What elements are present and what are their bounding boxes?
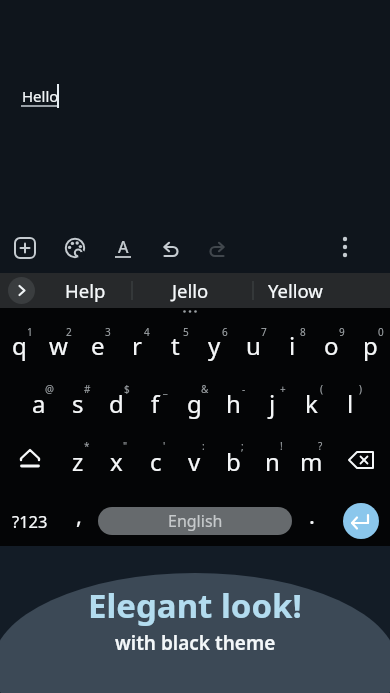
staticText: " xyxy=(123,439,128,453)
button[interactable] xyxy=(331,431,390,489)
staticText: 6 xyxy=(222,325,228,339)
button[interactable]: q xyxy=(0,315,39,373)
staticText: ! xyxy=(280,439,283,453)
button[interactable]: Yellow xyxy=(240,273,350,308)
staticText: . xyxy=(309,500,315,530)
staticText: c xyxy=(150,445,162,478)
button[interactable]: f xyxy=(136,373,175,431)
staticText: u xyxy=(246,329,261,362)
staticText: ' xyxy=(163,439,166,453)
staticText: d xyxy=(109,387,124,420)
button[interactable]: ?123 xyxy=(0,489,59,546)
staticText: 1 xyxy=(27,325,33,339)
staticText: 8 xyxy=(300,325,306,339)
button[interactable]: , xyxy=(59,489,98,546)
button[interactable]: y xyxy=(195,315,234,373)
button[interactable] xyxy=(14,237,36,259)
staticText: 0 xyxy=(378,325,384,339)
staticText: * xyxy=(84,439,90,453)
staticText: 3 xyxy=(105,325,111,339)
staticText: English xyxy=(168,510,223,532)
staticText: 7 xyxy=(261,325,267,339)
staticText: y xyxy=(208,329,221,362)
button[interactable] xyxy=(343,503,379,539)
staticText: - xyxy=(242,382,246,396)
staticText: $ xyxy=(124,382,130,396)
button[interactable]: s xyxy=(58,373,97,431)
staticText: e xyxy=(91,329,105,362)
staticText: v xyxy=(188,445,201,478)
button[interactable]: o xyxy=(312,315,351,373)
button[interactable]: p xyxy=(351,315,390,373)
button[interactable]: . xyxy=(292,489,331,546)
staticText: o xyxy=(324,329,339,362)
staticText: g xyxy=(187,387,202,420)
staticText: Yellow xyxy=(268,278,323,303)
staticText: k xyxy=(305,387,318,420)
staticText: l xyxy=(347,387,354,420)
button[interactable]: A xyxy=(112,236,134,260)
button[interactable]: u xyxy=(234,315,273,373)
staticText: + xyxy=(280,382,286,396)
staticText: 9 xyxy=(339,325,345,339)
staticText: with black theme xyxy=(115,630,276,656)
button[interactable] xyxy=(64,237,86,259)
staticText: s xyxy=(72,387,84,420)
button[interactable]: Jello xyxy=(135,273,245,308)
button[interactable]: x xyxy=(97,431,136,489)
button[interactable] xyxy=(8,277,35,304)
button[interactable]: m xyxy=(292,431,331,489)
staticText: x xyxy=(110,445,123,478)
staticText: ; xyxy=(241,439,244,453)
staticText: a xyxy=(32,387,46,420)
staticText: m xyxy=(300,445,323,478)
button[interactable]: a xyxy=(20,373,58,431)
button[interactable]: c xyxy=(136,431,175,489)
button[interactable]: b xyxy=(214,431,253,489)
staticText: r xyxy=(132,329,142,362)
button[interactable]: i xyxy=(273,315,312,373)
staticText: # xyxy=(84,382,91,396)
staticText: b xyxy=(226,445,241,478)
staticText: ? xyxy=(318,439,323,453)
button[interactable] xyxy=(207,237,229,259)
staticText: 5 xyxy=(183,325,189,339)
button[interactable]: English xyxy=(98,507,292,535)
button[interactable]: z xyxy=(59,431,97,489)
button[interactable]: t xyxy=(156,315,195,373)
staticText: : xyxy=(202,439,205,453)
staticText: Elegant look! xyxy=(88,583,302,628)
button[interactable] xyxy=(0,431,59,489)
staticText: 4 xyxy=(144,325,150,339)
button[interactable]: h xyxy=(214,373,253,431)
staticText: Hello xyxy=(22,86,59,106)
button[interactable]: w xyxy=(39,315,78,373)
button[interactable]: g xyxy=(175,373,214,431)
staticText: , xyxy=(76,500,82,530)
staticText: j xyxy=(269,387,276,420)
button[interactable]: e xyxy=(78,315,117,373)
button[interactable]: k xyxy=(292,373,331,431)
staticText: h xyxy=(226,387,241,420)
button[interactable]: v xyxy=(175,431,214,489)
button[interactable]: n xyxy=(253,431,292,489)
staticText: _ xyxy=(163,382,168,396)
button[interactable] xyxy=(159,237,181,259)
button[interactable]: Help xyxy=(25,273,145,308)
staticText: t xyxy=(171,329,180,362)
staticText: ?123 xyxy=(12,510,48,532)
button[interactable] xyxy=(335,234,355,262)
staticText: n xyxy=(265,445,280,478)
staticText: q xyxy=(12,329,27,362)
button[interactable]: d xyxy=(97,373,136,431)
button[interactable]: r xyxy=(117,315,156,373)
staticText: z xyxy=(72,445,84,478)
staticText: Jello xyxy=(172,278,209,303)
staticText: ( xyxy=(320,382,323,396)
staticText: p xyxy=(363,329,378,362)
staticText: w xyxy=(49,329,68,362)
staticText: i xyxy=(289,329,296,362)
button[interactable]: l xyxy=(331,373,370,431)
button[interactable]: j xyxy=(253,373,292,431)
staticText: Help xyxy=(65,278,106,303)
